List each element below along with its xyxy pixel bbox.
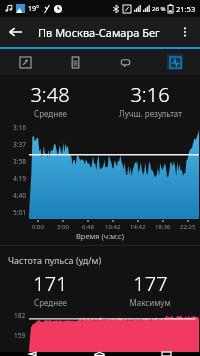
staticText: 3:37 bbox=[13, 140, 26, 149]
staticText: 5:01 bbox=[13, 208, 26, 217]
staticText: Частота пульса (уд/м) bbox=[8, 254, 102, 266]
staticText: Лучш. результат bbox=[119, 108, 182, 119]
button[interactable]: Heart rate bbox=[150, 49, 200, 75]
staticText: Среднее bbox=[34, 297, 67, 308]
staticText: 22:25 bbox=[180, 223, 196, 231]
staticText: 159 bbox=[14, 331, 26, 340]
staticText: 26 % bbox=[152, 5, 166, 13]
staticText: 177 bbox=[133, 270, 168, 297]
staticText: 4:19 bbox=[13, 174, 26, 183]
staticText: 0:00 bbox=[32, 223, 44, 231]
staticText: Среднее bbox=[34, 108, 67, 119]
button[interactable]: Back bbox=[0, 17, 30, 47]
button[interactable]: Details bbox=[50, 49, 100, 75]
staticText: 18:36 bbox=[155, 223, 171, 231]
staticText: 3:48 bbox=[30, 81, 70, 108]
staticText: 3:00 bbox=[57, 223, 69, 231]
staticText: Максимум bbox=[129, 297, 171, 308]
staticText: 3:16 bbox=[130, 81, 170, 108]
button[interactable]: Recents bbox=[133, 352, 200, 356]
staticText: 4:40 bbox=[13, 191, 26, 200]
staticText: 19° bbox=[28, 4, 40, 14]
staticText: Пв Москва-Самара Бег bbox=[38, 25, 160, 40]
staticText: 3:58 bbox=[13, 157, 26, 166]
button[interactable]: Map bbox=[0, 49, 50, 75]
button[interactable]: Home bbox=[66, 352, 133, 356]
button[interactable]: More options bbox=[170, 17, 200, 47]
staticText: 14:42 bbox=[130, 223, 146, 231]
button[interactable]: Back bbox=[0, 352, 66, 356]
staticText: 3:16 bbox=[13, 123, 26, 132]
staticText: 182 bbox=[14, 311, 26, 320]
button[interactable]: Laps bbox=[100, 49, 150, 75]
staticText: 21:53 bbox=[176, 4, 196, 14]
staticText: Время (ч:м:с) bbox=[76, 231, 124, 241]
staticText: 10:42 bbox=[105, 223, 121, 231]
staticText: 171 bbox=[33, 270, 68, 297]
staticText: 6:48 bbox=[82, 223, 94, 231]
